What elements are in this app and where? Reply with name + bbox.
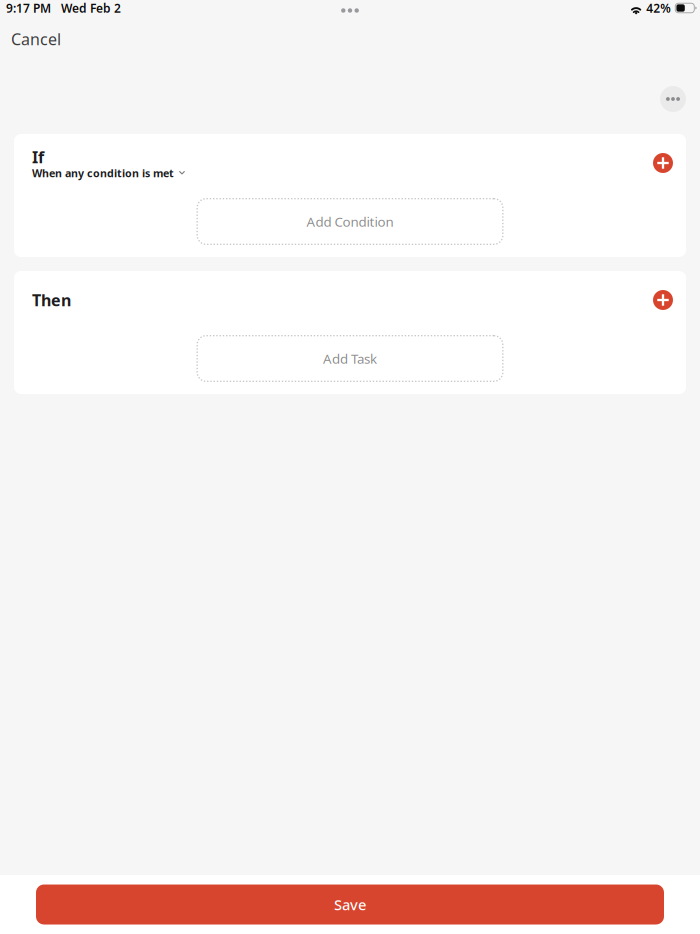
staticText: Save: [334, 895, 366, 914]
staticText: Add Task: [323, 350, 377, 367]
button[interactable]: Save: [36, 884, 664, 924]
button[interactable]: Add Condition: [196, 198, 503, 245]
button[interactable]: More: [660, 86, 686, 112]
staticText: Add Condition: [306, 213, 393, 230]
staticText: 9:17 PM: [6, 0, 51, 16]
staticText: If: [32, 146, 44, 168]
staticText: Then: [32, 289, 71, 311]
button[interactable]: Cancel: [0, 15, 72, 59]
staticText: Cancel: [11, 28, 61, 50]
staticText: Wed Feb 2: [61, 0, 121, 16]
button[interactable]: Add: [648, 148, 674, 178]
staticText: 42%: [646, 0, 671, 16]
button[interactable]: Add: [648, 285, 674, 315]
button[interactable]: Add Task: [196, 335, 503, 382]
staticText: When any condition is met: [32, 166, 174, 180]
